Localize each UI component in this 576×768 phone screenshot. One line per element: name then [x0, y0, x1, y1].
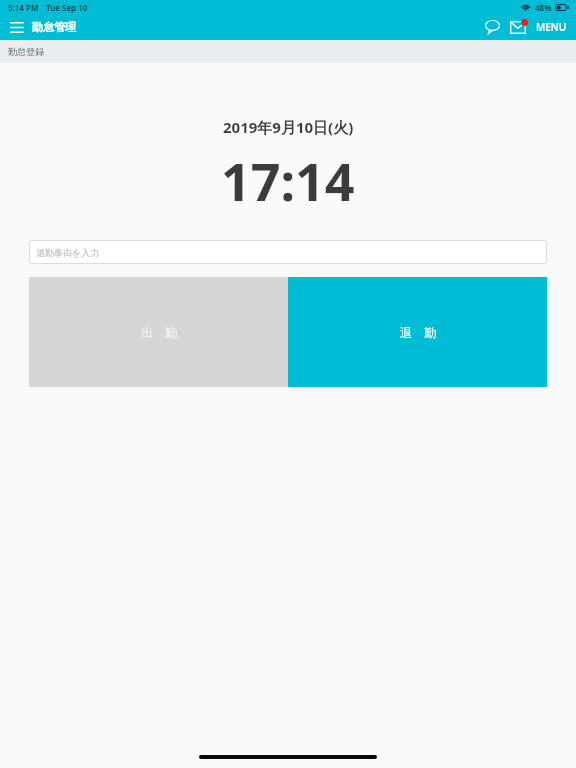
button[interactable]: Chat: [481, 16, 503, 38]
staticText: 出 勤: [141, 324, 177, 340]
button[interactable]: 退 勤: [288, 277, 547, 387]
staticText: MENU: [536, 20, 567, 34]
staticText: 退 勤: [400, 324, 436, 340]
staticText: Tue Sep 10: [46, 2, 88, 13]
button[interactable]: MENU: [534, 16, 569, 38]
button[interactable]: Open navigation menu: [6, 17, 27, 38]
staticText: 退勤事由を入力: [36, 247, 100, 258]
staticText: 5:14 PM: [8, 2, 39, 13]
staticText: 勤怠管理: [32, 20, 76, 34]
staticText: 48%: [535, 2, 552, 13]
button[interactable]: 退勤事由を入力: [29, 240, 547, 264]
staticText: 17:14: [221, 145, 355, 216]
staticText: 勤怠登録: [8, 46, 44, 57]
staticText: 2019年9月10日(火): [223, 117, 354, 137]
button[interactable]: Messages, 1 unread: [507, 16, 529, 38]
